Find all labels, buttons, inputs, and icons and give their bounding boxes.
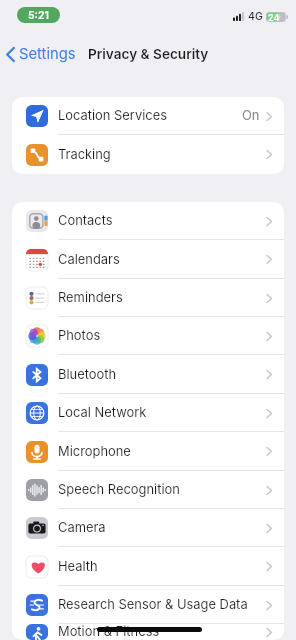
staticText: Settings: [19, 45, 76, 63]
staticText: Photos: [58, 328, 101, 344]
staticText: On: [242, 108, 260, 124]
button[interactable]: Settings: [6, 45, 76, 63]
staticText: 4G: [248, 10, 263, 23]
staticText: Reminders: [58, 290, 123, 306]
button[interactable]: Microphone: [12, 432, 284, 471]
button[interactable]: Local Network: [12, 394, 284, 432]
staticText: Local Network: [58, 405, 147, 421]
button[interactable]: Location Services: [12, 97, 284, 135]
staticText: Speech Recognition: [58, 482, 180, 498]
button[interactable]: Reminders: [12, 279, 284, 317]
button[interactable]: Health: [12, 547, 284, 586]
button[interactable]: Research Sensor & Usage Data: [12, 586, 284, 624]
staticText: Location Services: [58, 108, 167, 124]
button[interactable]: Photos: [12, 317, 284, 355]
staticText: Calendars: [58, 252, 120, 268]
staticText: Contacts: [58, 213, 113, 229]
staticText: Microphone: [58, 444, 131, 460]
staticText: Research Sensor & Usage Data: [58, 597, 248, 613]
button[interactable]: Contacts: [12, 202, 284, 240]
staticText: Bluetooth: [58, 367, 117, 383]
staticText: Privacy & Security: [88, 46, 209, 62]
staticText: 5:21: [28, 9, 49, 22]
staticText: Health: [58, 559, 98, 575]
button[interactable]: Speech Recognition: [12, 471, 284, 509]
button[interactable]: Tracking: [12, 135, 284, 174]
staticText: Camera: [58, 520, 106, 536]
staticText: 24: [268, 12, 280, 22]
button[interactable]: Calendars: [12, 240, 284, 279]
staticText: Tracking: [58, 147, 111, 163]
staticText: Motion & Fitness: [58, 624, 160, 640]
button[interactable]: Bluetooth: [12, 355, 284, 394]
button[interactable]: Camera: [12, 509, 284, 547]
button[interactable]: Motion & Fitness: [12, 624, 284, 640]
